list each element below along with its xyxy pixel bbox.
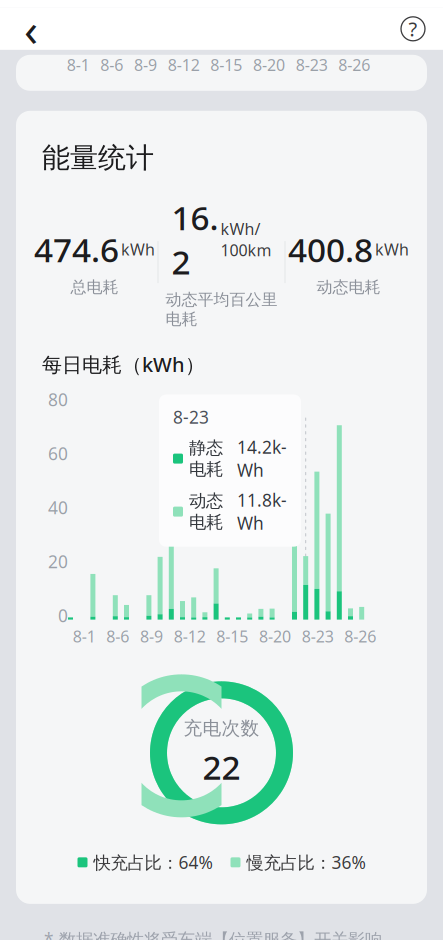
staticText: 8-12 bbox=[168, 54, 200, 75]
staticText: 快充占比：64% bbox=[93, 851, 212, 874]
staticText: 8-9 bbox=[134, 54, 157, 75]
staticText: 能量统计 bbox=[42, 141, 154, 175]
staticText: 动态电耗 bbox=[316, 277, 380, 297]
staticText: 20 bbox=[48, 550, 68, 573]
staticText: 22 bbox=[202, 745, 240, 789]
staticText: 8-23 bbox=[302, 626, 334, 647]
staticText: 总电耗 bbox=[70, 277, 118, 297]
staticText: * 数据准确性将受车端【位置服务】开关影响， bbox=[44, 928, 399, 940]
staticText: 8-20 bbox=[259, 626, 291, 647]
staticText: 动态平均百公里电耗 bbox=[165, 290, 277, 329]
staticText: 8-26 bbox=[344, 626, 376, 647]
staticText: 充电次数 bbox=[183, 717, 259, 740]
staticText: 8-20 bbox=[253, 54, 285, 75]
staticText: 8-6 bbox=[100, 54, 123, 75]
staticText: 8-12 bbox=[174, 626, 206, 647]
staticText: 400.8 bbox=[288, 227, 373, 271]
staticText: kWh bbox=[375, 239, 409, 260]
staticText: 8-1 bbox=[73, 626, 96, 647]
button[interactable]: Back bbox=[8, 8, 54, 50]
staticText: kWh bbox=[121, 239, 155, 260]
staticText: ‹ bbox=[24, 0, 38, 59]
staticText: 静态电耗 bbox=[189, 437, 223, 480]
staticText: 8-15 bbox=[210, 54, 242, 75]
staticText: 动态电耗 bbox=[189, 490, 223, 533]
staticText: 0 bbox=[58, 604, 68, 627]
staticText: 8-15 bbox=[216, 626, 248, 647]
staticText: 每日电耗（kWh） bbox=[42, 351, 205, 378]
staticText: 11.8kWh bbox=[237, 489, 287, 535]
staticText: kWh/100km bbox=[220, 218, 271, 261]
button[interactable]: Help bbox=[391, 8, 435, 50]
staticText: 40 bbox=[48, 496, 68, 519]
staticText: 8-9 bbox=[140, 626, 163, 647]
staticText: 14.2kWh bbox=[237, 436, 287, 482]
staticText: 8-6 bbox=[106, 626, 129, 647]
staticText: ? bbox=[408, 15, 417, 42]
staticText: 8-26 bbox=[338, 54, 370, 75]
staticText: 8-23 bbox=[296, 54, 328, 75]
staticText: 474.6 bbox=[34, 227, 119, 271]
staticText: 8-1 bbox=[67, 54, 90, 75]
staticText: 80 bbox=[48, 388, 68, 411]
staticText: 慢充占比：36% bbox=[246, 851, 365, 874]
staticText: 8-23 bbox=[173, 406, 209, 429]
staticText: 60 bbox=[48, 442, 68, 465]
staticText: 16.2 bbox=[171, 195, 218, 284]
